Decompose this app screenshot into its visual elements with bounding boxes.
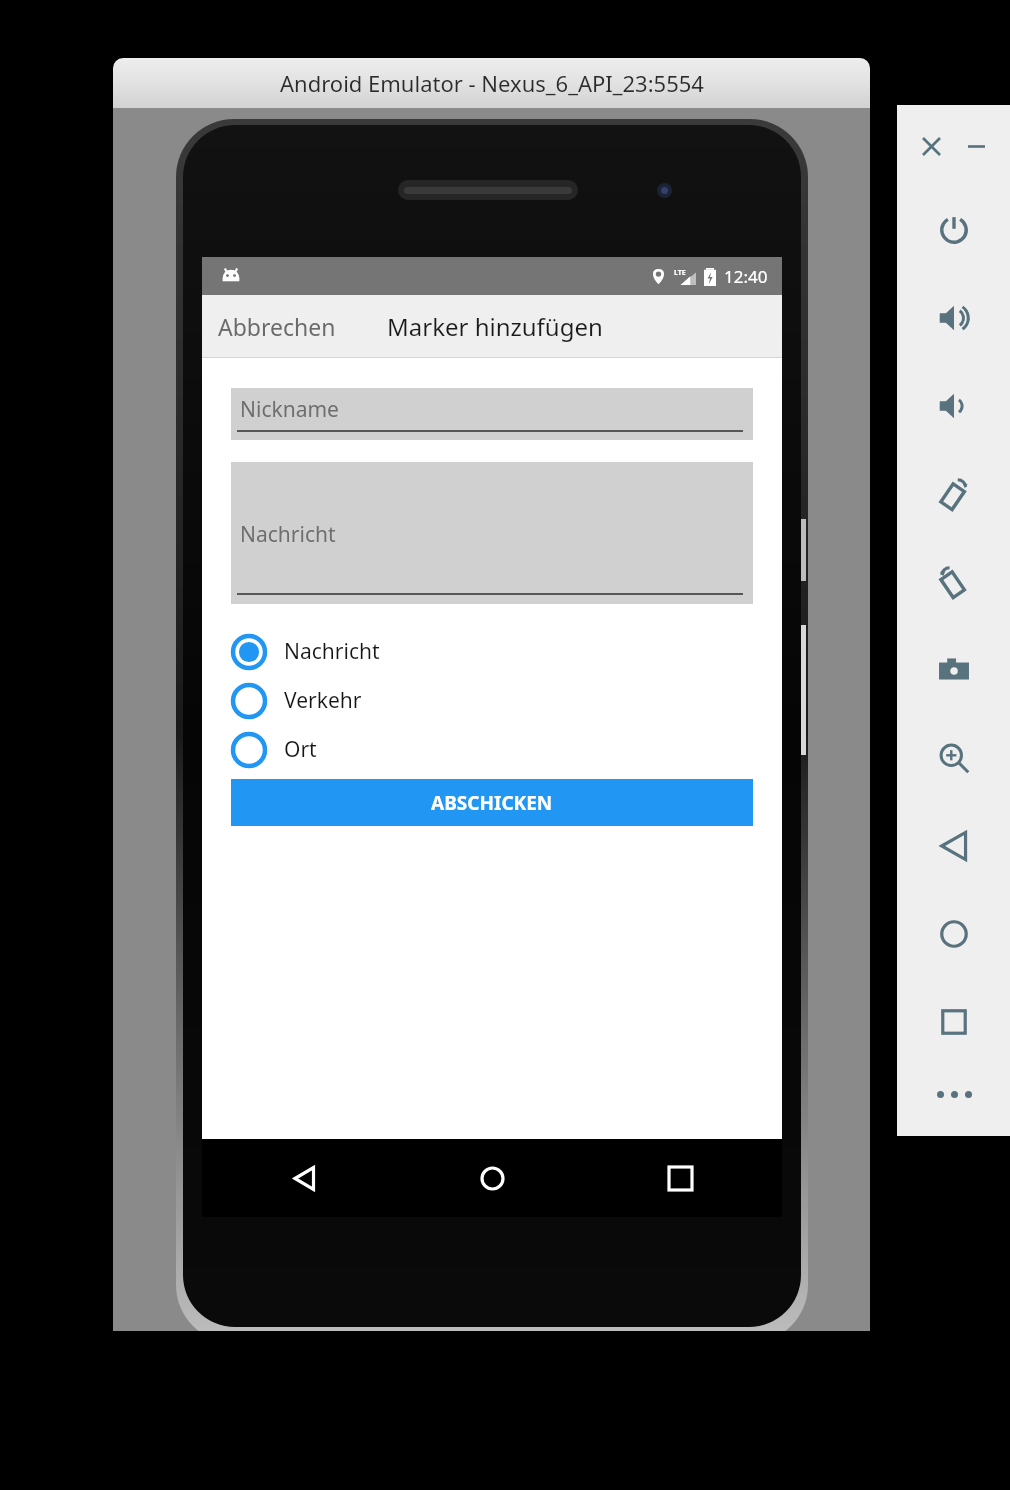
- button[interactable]: Rotate right: [897, 552, 1010, 612]
- button[interactable]: Recent apps: [897, 992, 1010, 1052]
- staticText: Nachricht: [284, 637, 380, 666]
- button[interactable]: More: [930, 1070, 978, 1118]
- button[interactable]: Verkehr: [231, 676, 753, 725]
- button[interactable]: Zoom: [897, 728, 1010, 788]
- staticText: Nickname: [240, 395, 339, 424]
- button[interactable]: Power: [897, 200, 1010, 260]
- button[interactable]: Nachricht: [231, 627, 753, 676]
- button[interactable]: Minimize: [959, 129, 993, 163]
- staticText: Ort: [284, 735, 317, 764]
- button[interactable]: Back: [897, 816, 1010, 876]
- button[interactable]: Take screenshot: [897, 640, 1010, 700]
- button[interactable]: Volume up: [897, 288, 1010, 348]
- button[interactable]: Nachricht: [231, 462, 753, 604]
- button[interactable]: Home: [897, 904, 1010, 964]
- staticText: Nachricht: [240, 520, 336, 549]
- staticText: 12:40: [724, 265, 768, 288]
- button[interactable]: Home: [464, 1150, 520, 1206]
- button[interactable]: Recent apps: [652, 1150, 708, 1206]
- button[interactable]: Close: [914, 129, 948, 163]
- button[interactable]: Ort: [231, 725, 753, 774]
- staticText: Abbrechen: [218, 311, 336, 342]
- staticText: Marker hinzufügen: [387, 310, 603, 343]
- button[interactable]: Volume down: [897, 376, 1010, 436]
- button[interactable]: ABSCHICKEN: [231, 779, 753, 826]
- button[interactable]: Nickname: [231, 388, 753, 440]
- staticText: Verkehr: [284, 686, 362, 715]
- button[interactable]: Rotate left: [897, 464, 1010, 524]
- staticText: ABSCHICKEN: [431, 790, 553, 816]
- button[interactable]: Abbrechen: [202, 301, 352, 352]
- staticText: Android Emulator - Nexus_6_API_23:5554: [280, 68, 704, 98]
- button[interactable]: Back: [276, 1150, 332, 1206]
- staticText: LTE: [674, 268, 686, 278]
